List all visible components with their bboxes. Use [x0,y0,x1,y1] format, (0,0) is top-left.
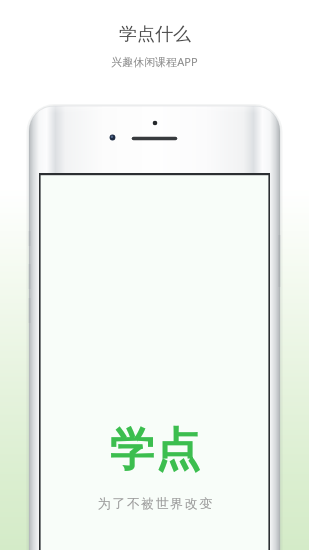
button[interactable]: 学点 App 手机预览 [21,101,288,550]
staticText: 学点 [109,422,201,479]
staticText: 学点什么 [119,23,191,46]
staticText: 兴趣休闲课程APP [111,54,198,69]
staticText: 为了不被世界改变 [97,495,213,511]
